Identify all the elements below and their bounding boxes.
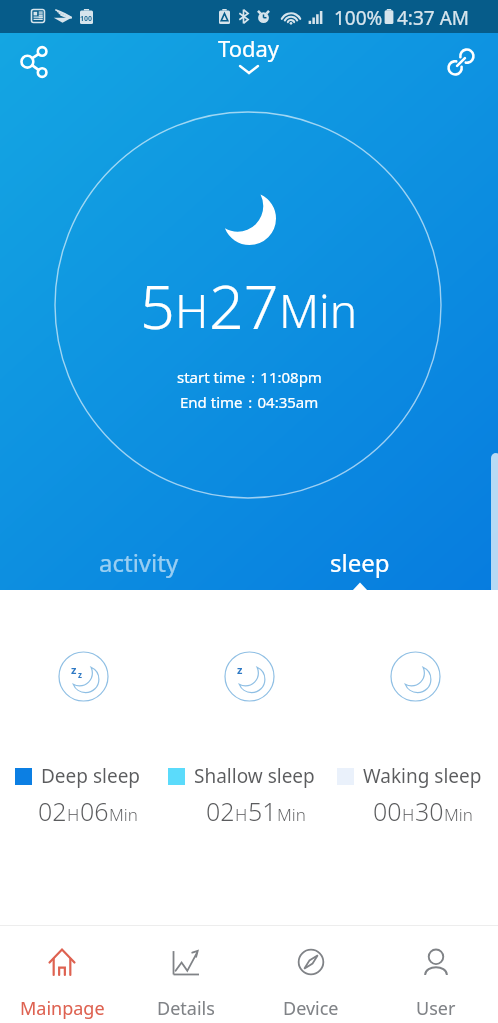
button[interactable]: Deep sleep — [15, 763, 141, 789]
staticText: H — [67, 803, 80, 826]
staticText: H — [235, 803, 248, 826]
staticText: 100 — [80, 14, 93, 24]
staticText: 4:37 AM — [397, 5, 470, 31]
staticText: z — [71, 662, 77, 677]
staticText: Min — [444, 803, 473, 826]
button[interactable]: Device — [248, 925, 373, 1023]
button[interactable]: User — [373, 925, 498, 1023]
button[interactable]: Share — [12, 37, 62, 87]
staticText: Details — [157, 996, 215, 1021]
staticText: activity — [99, 546, 179, 579]
button[interactable]: sleep — [290, 538, 430, 586]
staticText: H — [175, 279, 209, 342]
staticText: 06 — [80, 794, 109, 828]
staticText: sleep — [330, 546, 390, 579]
staticText: 100% — [334, 5, 383, 31]
staticText: 02 — [206, 794, 235, 828]
staticText: Today — [218, 33, 280, 63]
staticText: Min — [279, 279, 358, 342]
button[interactable]: Waking sleep — [337, 763, 482, 789]
staticText: Min — [109, 803, 138, 826]
staticText: Shallow sleep — [194, 763, 315, 789]
staticText: z — [237, 662, 243, 677]
staticText: 27 — [209, 264, 279, 347]
button[interactable]: Today — [218, 33, 280, 75]
staticText: 02 — [38, 794, 67, 828]
staticText: Device — [283, 996, 339, 1021]
button[interactable]: Link — [436, 37, 486, 87]
staticText: Min — [277, 803, 306, 826]
staticText: start time：11:08pm — [177, 367, 322, 387]
staticText: z — [78, 669, 82, 680]
staticText: H — [402, 803, 415, 826]
button[interactable]: Details — [124, 925, 248, 1023]
staticText: Mainpage — [20, 996, 105, 1021]
staticText: 5 — [140, 264, 175, 347]
staticText: 30 — [415, 794, 444, 828]
staticText: Deep sleep — [41, 763, 141, 789]
staticText: Waking sleep — [363, 763, 482, 789]
staticText: End time：04:35am — [180, 392, 319, 412]
staticText: User — [416, 996, 456, 1021]
staticText: 00 — [373, 794, 402, 828]
button[interactable]: Shallow sleep — [168, 763, 315, 789]
button[interactable]: activity — [60, 538, 218, 586]
staticText: 51 — [248, 794, 277, 828]
button[interactable]: Mainpage — [0, 925, 124, 1023]
